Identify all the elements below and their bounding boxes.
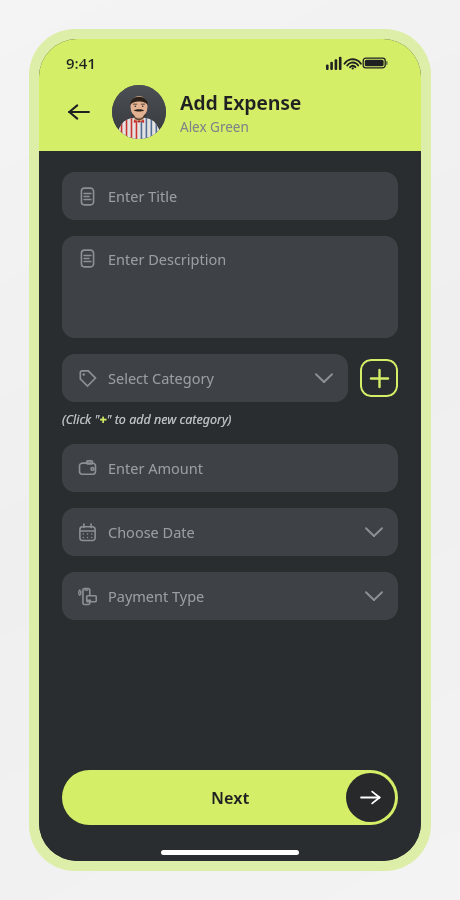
button[interactable]: Enter Amount <box>62 444 398 492</box>
button[interactable]: Enter Title <box>62 172 398 220</box>
button[interactable]: Next <box>346 773 395 822</box>
staticText: (Click "+" to add new category) <box>62 411 232 428</box>
staticText: Choose Date <box>108 522 195 542</box>
staticText: 9:41 <box>66 53 96 73</box>
staticText: Payment Type <box>108 586 205 606</box>
staticText: Enter Description <box>108 249 227 269</box>
button[interactable]: Select Category <box>62 354 348 402</box>
staticText: Add Expense <box>180 89 302 116</box>
button[interactable]: Next <box>62 770 398 825</box>
button[interactable]: Back <box>59 92 99 132</box>
staticText: Select Category <box>108 368 214 388</box>
button[interactable]: Enter Description <box>62 236 398 338</box>
staticText: Next <box>211 787 250 809</box>
staticText: Alex Green <box>180 118 249 136</box>
button[interactable]: Choose Date <box>62 508 398 556</box>
button[interactable]: Payment Type <box>62 572 398 620</box>
staticText: Enter Amount <box>108 458 203 478</box>
button[interactable]: Add new category <box>360 359 398 397</box>
staticText: Enter Title <box>108 186 178 206</box>
